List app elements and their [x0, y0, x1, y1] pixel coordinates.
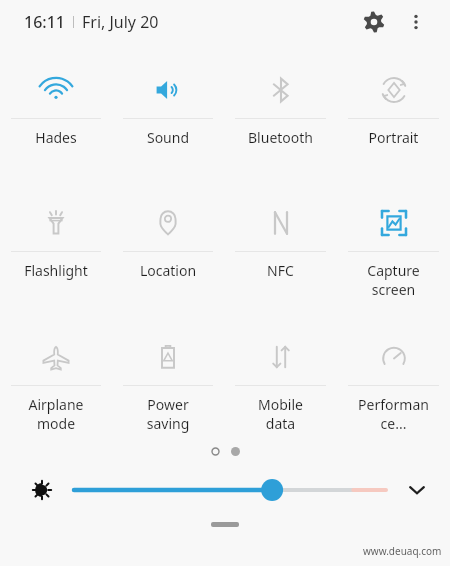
button[interactable]: Bluetooth: [224, 62, 337, 147]
button[interactable]: Collapse panel: [211, 522, 239, 527]
button[interactable]: Capture screen: [337, 195, 450, 299]
button[interactable]: Settings: [352, 0, 396, 44]
staticText: Bluetooth: [224, 128, 337, 147]
button[interactable]: Auto brightness: [28, 476, 56, 504]
staticText: Portrait: [337, 128, 450, 147]
staticText: 16:11: [24, 11, 65, 33]
staticText: www.deuaq.com: [363, 544, 442, 558]
staticText: Fri, July 20: [82, 11, 159, 33]
button[interactable]: Flashlight: [0, 195, 112, 280]
button[interactable]: Portrait: [337, 62, 450, 147]
staticText: Mobile data: [224, 395, 337, 433]
button[interactable]: Sound: [112, 62, 224, 147]
button[interactable]: Hades: [0, 62, 112, 147]
staticText: Sound: [112, 128, 224, 147]
staticText: Location: [112, 261, 224, 280]
button[interactable]: Airplane mode: [0, 329, 112, 433]
staticText: NFC: [224, 261, 337, 280]
button[interactable]: Mobile data: [224, 329, 337, 433]
button[interactable]: More options: [396, 2, 436, 42]
button[interactable]: Location: [112, 195, 224, 280]
staticText: Capture screen: [337, 261, 450, 299]
button[interactable]: Power saving: [112, 329, 224, 433]
button[interactable]: Expand: [402, 475, 432, 505]
staticText: Airplane mode: [0, 395, 112, 433]
staticText: Flashlight: [0, 261, 112, 280]
staticText: Power saving: [112, 395, 224, 433]
button[interactable]: NFC: [224, 195, 337, 280]
button[interactable]: Brightness slider: [74, 475, 386, 505]
staticText: Performan ce...: [337, 395, 450, 433]
staticText: Hades: [0, 128, 112, 147]
button[interactable]: Performan ce...: [337, 329, 450, 433]
